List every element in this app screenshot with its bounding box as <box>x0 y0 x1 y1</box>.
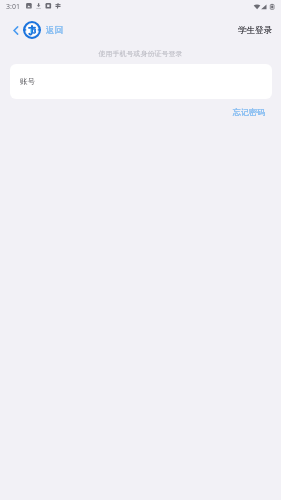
button[interactable]: Back <box>11 21 63 39</box>
staticText: 3:01 <box>6 2 20 12</box>
button[interactable]: 账号 <box>10 64 272 99</box>
staticText: 忘记密码 <box>233 107 265 117</box>
button[interactable]: 忘记密码 <box>233 107 265 117</box>
staticText: 忘记密码 <box>233 107 265 117</box>
staticText: 学生登录 <box>238 25 272 36</box>
staticText: 返回 <box>46 25 63 36</box>
staticText: 返回 <box>46 25 63 36</box>
staticText: 使用手机号或身份证号登录 <box>0 49 281 58</box>
other: Back <box>11 26 20 35</box>
staticText: 学生登录 <box>238 25 272 36</box>
button[interactable]: 学生登录 <box>238 25 272 36</box>
staticText: 账号 <box>20 77 36 87</box>
